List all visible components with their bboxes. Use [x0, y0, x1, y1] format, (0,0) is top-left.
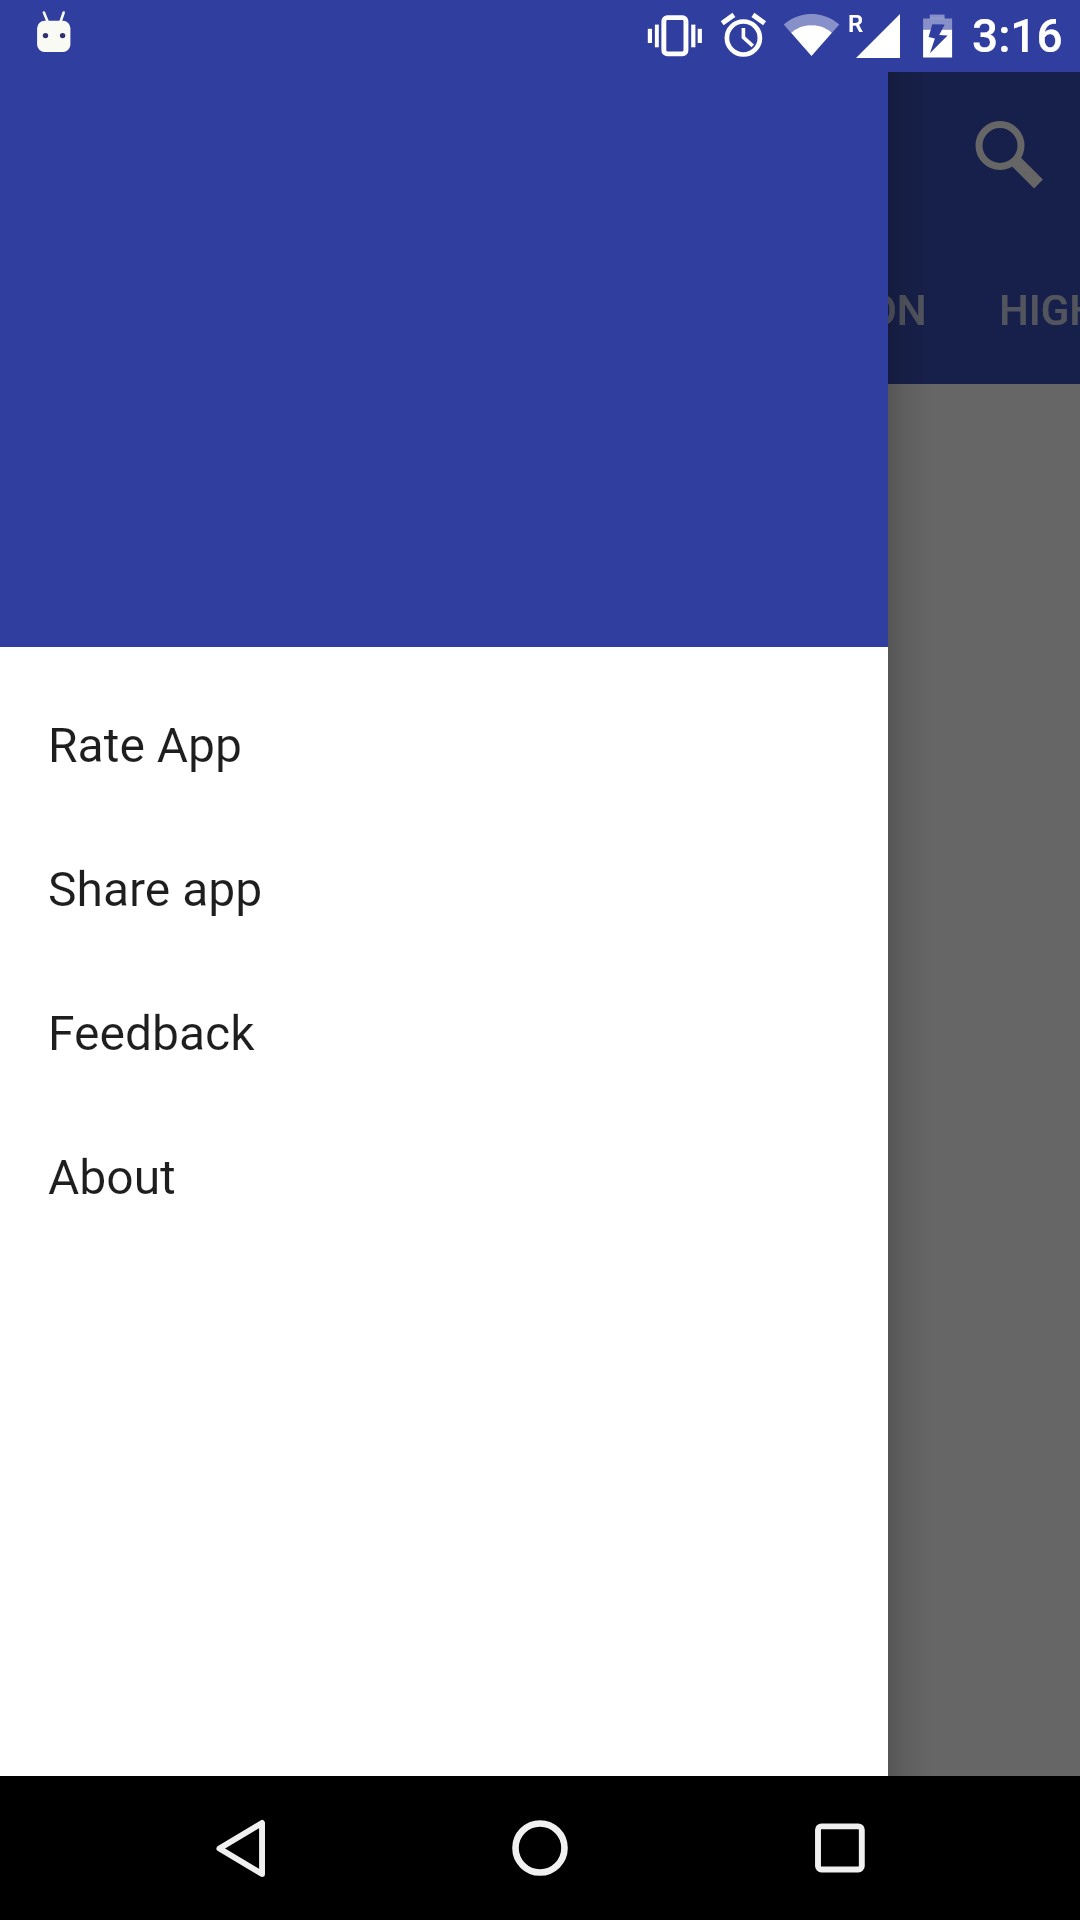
staticText: R [848, 10, 863, 38]
staticText: Share app [48, 861, 263, 917]
staticText: 3:16 [972, 9, 1063, 63]
button[interactable]: Close navigation drawer [0, 72, 1080, 1920]
staticText: HIGHEST RATED [999, 286, 1080, 335]
button[interactable]: Feedback [0, 961, 888, 1105]
button[interactable]: HIGHEST RATED [963, 240, 1080, 384]
staticText: ANIMATION [698, 286, 927, 335]
button[interactable]: Back [185, 1793, 295, 1903]
button[interactable]: About [0, 1105, 888, 1249]
staticText: About [48, 1149, 176, 1205]
button[interactable]: Recents [785, 1793, 895, 1903]
button[interactable]: Home [485, 1793, 595, 1903]
button[interactable]: Search [950, 100, 1062, 212]
button[interactable]: Rate App [0, 673, 888, 817]
staticText: Feedback [48, 1005, 255, 1061]
staticText: Rate App [48, 717, 242, 773]
button[interactable]: Share app [0, 817, 888, 961]
button[interactable]: ANIMATION [0, 240, 927, 384]
